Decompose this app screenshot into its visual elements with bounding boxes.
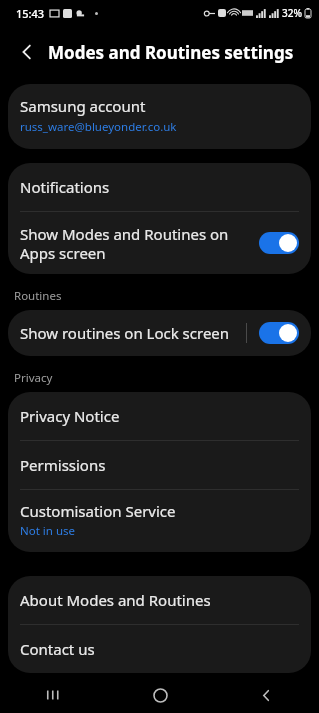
- staticText: Privacy Notice: [20, 406, 120, 426]
- button[interactable]: Privacy Notice: [8, 392, 311, 440]
- staticText: Notifications: [20, 177, 110, 197]
- button[interactable]: Show Modes and Routines on Apps screen: [8, 212, 311, 274]
- staticText: 15:43: [16, 6, 45, 21]
- staticText: Customisation Service: [20, 501, 176, 521]
- button[interactable]: Notifications: [8, 163, 311, 211]
- staticText: About Modes and Routines: [20, 590, 211, 610]
- button[interactable]: About Modes and Routines: [8, 576, 311, 624]
- staticText: Modes and Routines settings: [48, 41, 294, 64]
- staticText: Samsung account: [20, 96, 146, 116]
- staticText: Show routines on Lock screen: [20, 323, 246, 343]
- button[interactable]: Toggle on: [259, 322, 299, 344]
- button[interactable]: Back: [6, 31, 48, 73]
- staticText: 32%: [282, 6, 302, 20]
- button[interactable]: Back: [213, 677, 319, 713]
- button[interactable]: Recent apps: [0, 677, 107, 713]
- staticText: Routines: [14, 288, 62, 304]
- button[interactable]: Customisation Service: [8, 490, 311, 552]
- staticText: Permissions: [20, 455, 106, 475]
- staticText: Privacy: [14, 370, 53, 386]
- button[interactable]: Show routines on Lock screen: [8, 310, 311, 356]
- staticText: russ_ware@blueyonder.co.uk: [20, 119, 177, 135]
- staticText: Contact us: [20, 639, 95, 659]
- staticText: Not in use: [20, 523, 76, 539]
- button[interactable]: Permissions: [8, 441, 311, 489]
- button[interactable]: Samsung account: [8, 84, 311, 149]
- button[interactable]: Contact us: [8, 625, 311, 673]
- button[interactable]: Home: [107, 677, 213, 713]
- button[interactable]: Toggle on: [259, 232, 299, 254]
- staticText: Show Modes and Routines on Apps screen: [20, 224, 251, 263]
